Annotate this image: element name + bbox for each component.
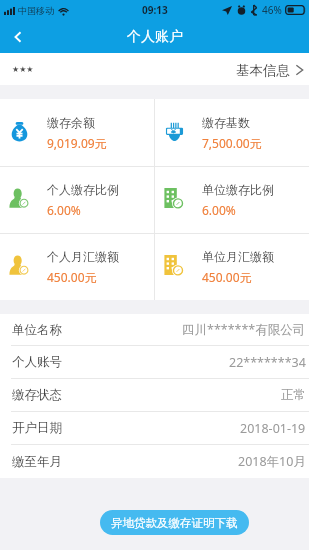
staticText: 个人缴存比例	[47, 182, 119, 197]
staticText: 缴存状态	[12, 387, 62, 403]
button[interactable]: 异地贷款及缴存证明下载	[100, 510, 249, 535]
staticText: 6.00%	[202, 202, 236, 218]
button[interactable]: 开户日期	[0, 412, 309, 444]
staticText: 中国移动	[18, 5, 54, 16]
staticText: 450.00元	[47, 269, 97, 285]
button[interactable]: 个人月汇缴额	[0, 234, 154, 300]
button[interactable]: 缴存基数	[155, 99, 309, 166]
staticText: 个人账户	[127, 28, 183, 46]
button[interactable]: 缴至年月	[0, 445, 309, 478]
staticText: 7,500.00元	[202, 135, 262, 151]
button[interactable]: 单位月汇缴额	[155, 234, 309, 300]
staticText: 个人账号	[12, 354, 62, 370]
staticText: 四川*******有限公司	[182, 321, 306, 338]
staticText: ★★★	[12, 65, 34, 74]
staticText: 46%	[262, 3, 282, 17]
button[interactable]: 缴存状态	[0, 379, 309, 411]
staticText: 缴存基数	[202, 115, 250, 130]
staticText: 缴存余额	[47, 115, 95, 130]
button[interactable]: 单位缴存比例	[155, 167, 309, 233]
button[interactable]: 个人账号	[0, 346, 309, 378]
staticText: 2018年10月	[238, 453, 306, 470]
staticText: 开户日期	[12, 420, 62, 436]
staticText: 缴至年月	[12, 454, 62, 470]
staticText: 个人月汇缴额	[47, 249, 119, 264]
staticText: 正常	[281, 387, 306, 403]
staticText: 9,019.09元	[47, 135, 107, 151]
button[interactable]: ★★★	[0, 53, 309, 85]
staticText: 异地贷款及缴存证明下载	[111, 516, 238, 530]
staticText: 09:13	[142, 3, 168, 17]
staticText: 单位名称	[12, 322, 62, 338]
staticText: 基本信息	[236, 62, 290, 79]
button[interactable]: 个人缴存比例	[0, 167, 154, 233]
staticText: 单位缴存比例	[202, 182, 274, 197]
button[interactable]: 单位名称	[0, 314, 309, 345]
staticText: 单位月汇缴额	[202, 249, 274, 264]
staticText: 450.00元	[202, 269, 252, 285]
staticText: 22*******34	[229, 354, 306, 371]
button[interactable]: Back	[0, 20, 36, 53]
button[interactable]: 缴存余额	[0, 99, 154, 166]
staticText: 6.00%	[47, 202, 81, 218]
staticText: 2018-01-19	[240, 420, 306, 437]
